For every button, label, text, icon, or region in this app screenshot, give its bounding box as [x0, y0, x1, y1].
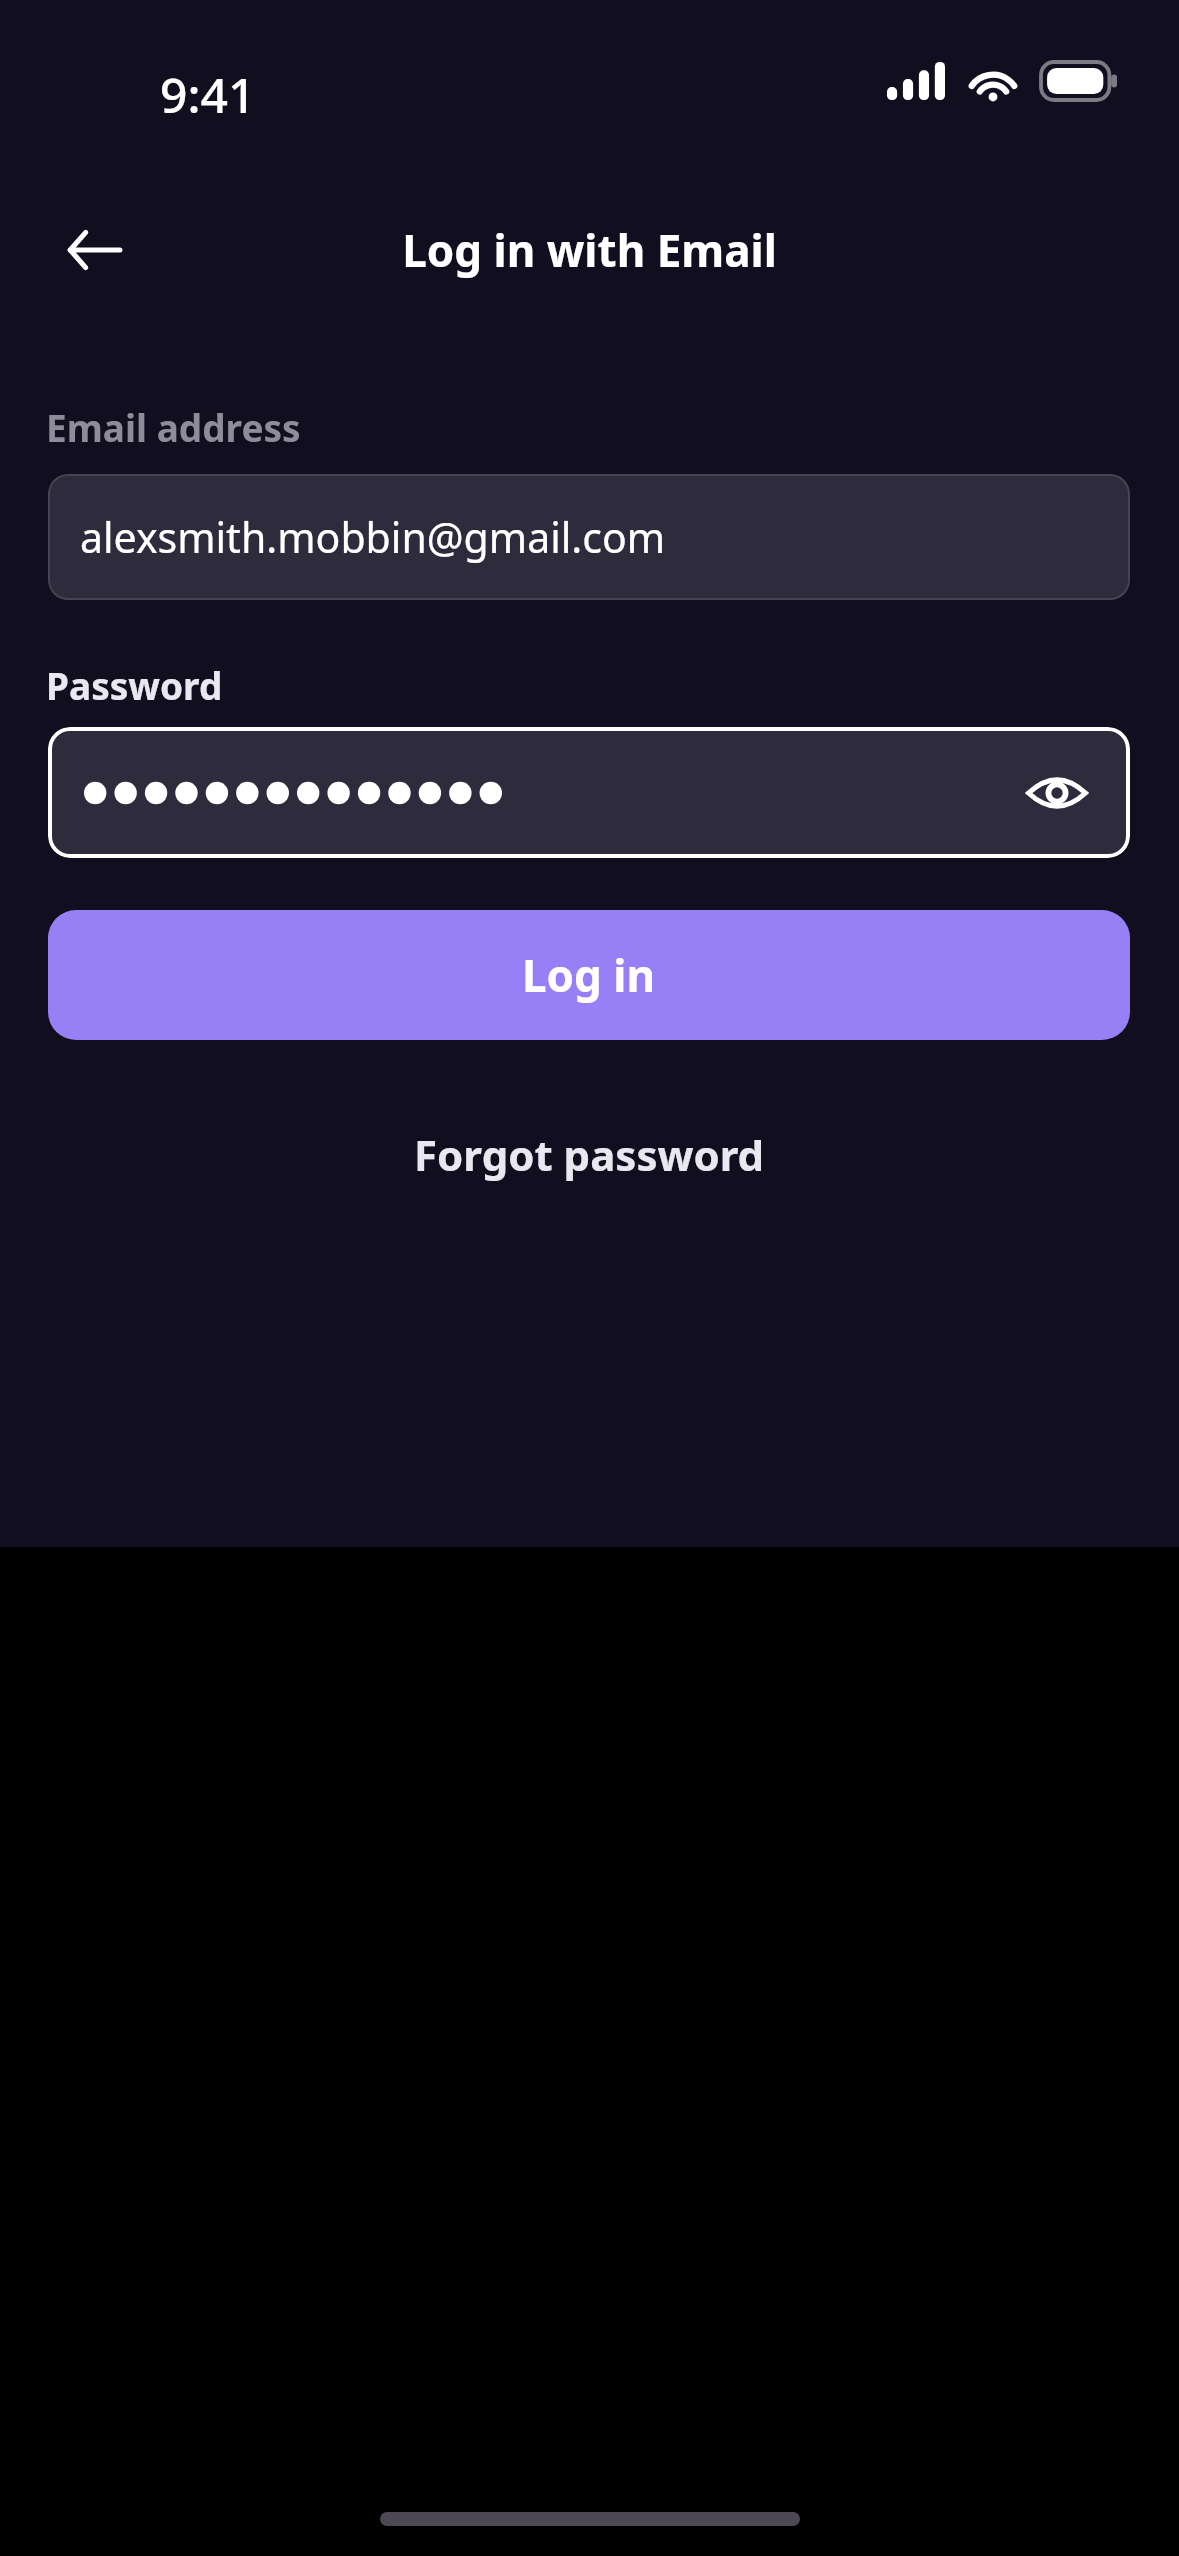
button[interactable]: Show password	[48, 727, 1130, 858]
button[interactable]: Back	[48, 204, 140, 296]
staticText: 9:41	[160, 62, 256, 127]
button[interactable]: Log in	[48, 910, 1130, 1040]
staticText: alexsmith.mobbin@gmail.com	[80, 509, 666, 565]
staticText: Log in with Email	[402, 220, 777, 280]
button[interactable]: Show password	[1014, 750, 1100, 836]
staticText: Password	[46, 660, 223, 710]
button[interactable]: alexsmith.mobbin@gmail.com	[48, 474, 1130, 600]
staticText: Forgot password	[414, 1126, 765, 1183]
staticText: Log in	[522, 945, 656, 1005]
staticText: Email address	[46, 402, 301, 452]
button[interactable]: Forgot password	[390, 1114, 789, 1195]
